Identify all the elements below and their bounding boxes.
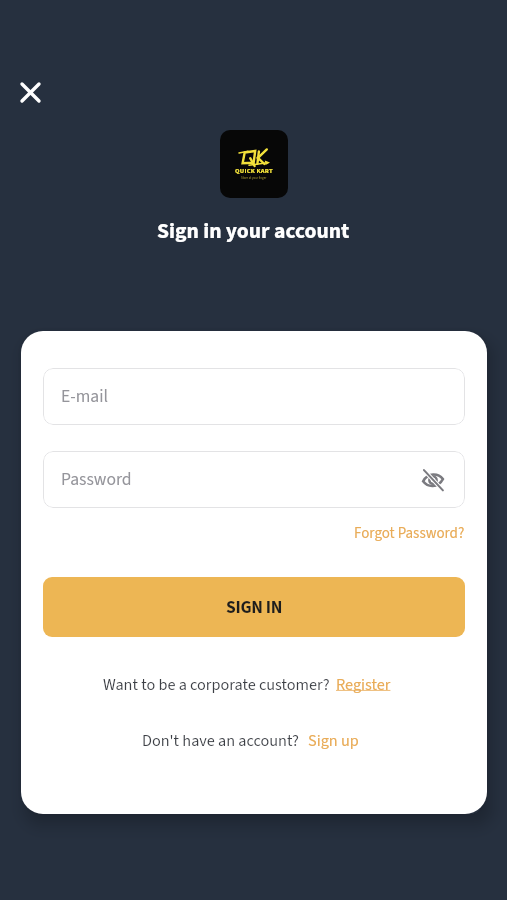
staticText: Forgot Password? bbox=[354, 523, 465, 544]
staticText: Store at your finger bbox=[241, 176, 267, 181]
staticText: E-mail bbox=[61, 384, 109, 409]
button[interactable]: Register bbox=[336, 673, 391, 696]
staticText: Password bbox=[61, 467, 132, 492]
staticText: Register bbox=[336, 673, 391, 696]
button[interactable]: Forgot Password? bbox=[354, 523, 465, 544]
button[interactable]: Password bbox=[43, 451, 465, 508]
staticText: Don't have an account? bbox=[142, 729, 299, 752]
button[interactable]: Close bbox=[11, 73, 49, 111]
button[interactable]: Sign up bbox=[308, 729, 359, 752]
staticText: QUICK KART bbox=[235, 166, 273, 175]
staticText: SIGN IN bbox=[226, 595, 283, 620]
staticText: Want to be a corporate customer? bbox=[103, 673, 330, 696]
staticText: Sign up bbox=[308, 729, 359, 752]
button[interactable]: SIGN IN bbox=[43, 577, 465, 637]
staticText: Sign in your account bbox=[157, 216, 350, 247]
button[interactable]: Toggle password visibility bbox=[419, 466, 447, 494]
button[interactable]: E-mail bbox=[43, 368, 465, 425]
